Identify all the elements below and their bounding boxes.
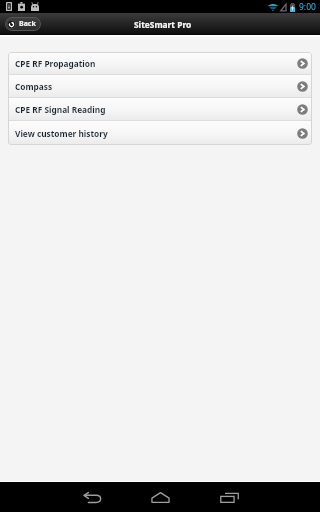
staticText: Compass	[15, 81, 53, 92]
button[interactable]: Compass	[8, 75, 312, 97]
button[interactable]: CPE RF Propagation	[8, 52, 312, 74]
button[interactable]: View customer history	[8, 121, 312, 145]
button[interactable]: Back	[74, 482, 110, 512]
button[interactable]: Recent apps	[211, 482, 247, 512]
button[interactable]: CPE RF Signal Reading	[8, 98, 312, 120]
staticText: Back	[19, 19, 36, 29]
staticText: CPE RF Signal Reading	[15, 104, 106, 115]
button[interactable]: Back	[5, 17, 41, 31]
staticText: CPE RF Propagation	[15, 58, 96, 69]
staticText: SiteSmart Pro	[134, 19, 192, 30]
staticText: 9:00	[299, 1, 316, 13]
staticText: View customer history	[15, 128, 108, 139]
button[interactable]: Home	[142, 482, 178, 512]
